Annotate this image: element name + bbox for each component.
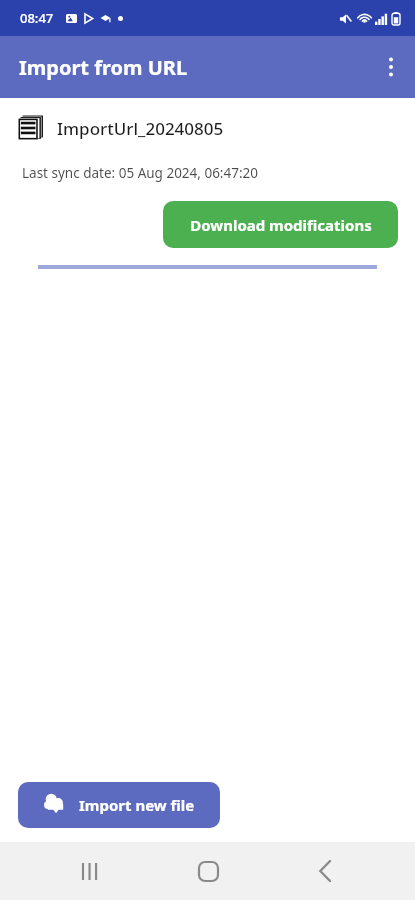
- button[interactable]: Download modifications: [163, 201, 398, 248]
- button[interactable]: Home: [180, 843, 236, 899]
- button[interactable]: Back: [297, 843, 353, 899]
- staticText: 08:47: [20, 9, 54, 27]
- button[interactable]: Import new file: [18, 782, 220, 828]
- staticText: Import new file: [79, 795, 195, 815]
- button[interactable]: Recent apps: [62, 843, 118, 899]
- button[interactable]: More options: [367, 43, 415, 91]
- staticText: Download modifications: [190, 215, 372, 235]
- staticText: Last sync date: 05 Aug 2024, 06:47:20: [22, 164, 258, 182]
- staticText: ImportUrl_20240805: [57, 117, 224, 140]
- staticText: Import from URL: [19, 54, 188, 81]
